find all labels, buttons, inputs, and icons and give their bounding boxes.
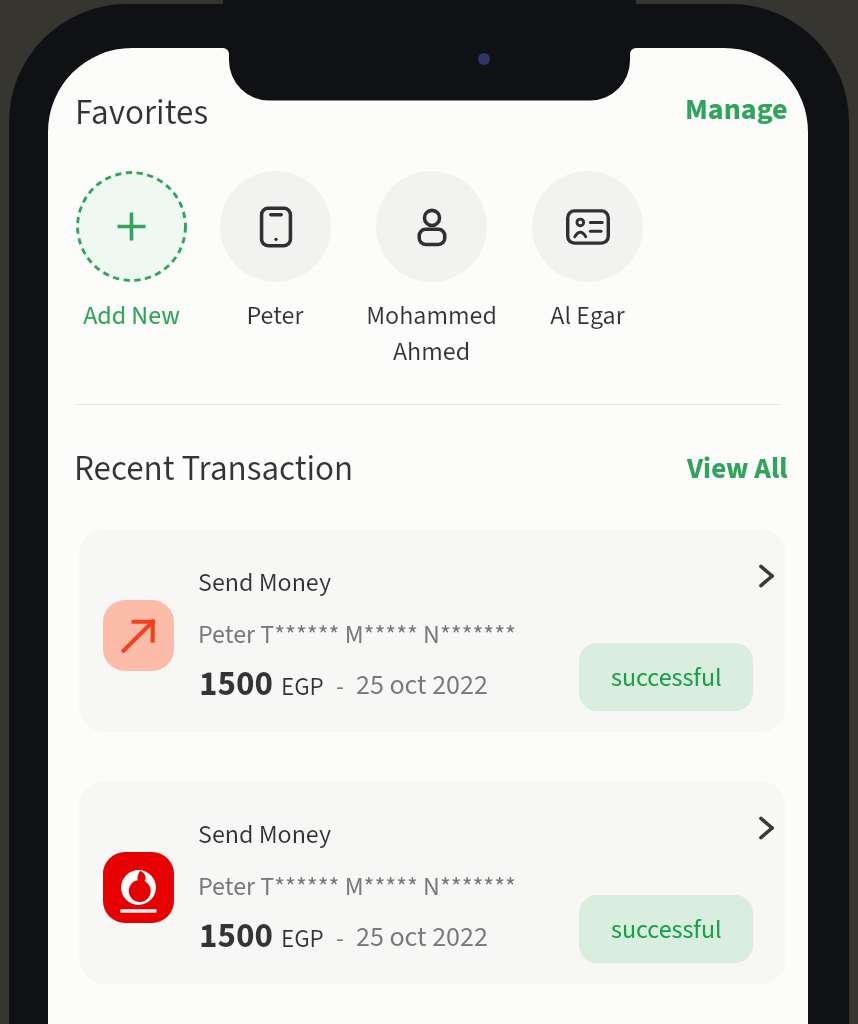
button[interactable]: Open transaction details <box>749 811 783 845</box>
button[interactable]: View All <box>572 445 788 491</box>
staticText: 1500 <box>199 659 273 709</box>
button[interactable]: Mohammed Ahmed <box>376 171 487 282</box>
button[interactable]: successful <box>579 895 753 963</box>
staticText: Al Egar <box>550 297 625 334</box>
button[interactable]: Peter <box>220 171 331 282</box>
button[interactable]: Open transaction details <box>749 559 783 593</box>
staticText: Favorites <box>75 88 209 138</box>
staticText: - <box>336 921 344 957</box>
staticText: successful <box>611 659 722 696</box>
staticText: Peter T****** M***** N******* <box>198 616 516 653</box>
button[interactable]: Add New <box>76 171 187 282</box>
staticText: EGP <box>281 921 324 957</box>
staticText: Send Money <box>198 816 332 853</box>
staticText: 25 oct 2022 <box>356 665 488 705</box>
staticText: 1500 <box>199 911 273 961</box>
staticText: successful <box>611 911 722 948</box>
staticText: Mohammed Ahmed <box>366 297 497 370</box>
staticText: EGP <box>281 669 324 705</box>
button[interactable] <box>79 529 786 732</box>
staticText: 25 oct 2022 <box>356 917 488 957</box>
staticText: - <box>336 669 344 705</box>
button[interactable]: successful <box>579 643 753 711</box>
staticText: Manage <box>685 88 788 131</box>
button[interactable]: Al Egar <box>532 171 643 282</box>
button[interactable]: Manage <box>572 86 788 132</box>
staticText: Peter <box>246 297 304 334</box>
button[interactable] <box>79 781 786 984</box>
staticText: Peter T****** M***** N******* <box>198 868 516 905</box>
staticText: Add New <box>83 297 180 334</box>
staticText: Recent Transaction <box>74 444 354 494</box>
staticText: Send Money <box>198 564 332 601</box>
button[interactable]: Favorites <box>67 81 201 131</box>
staticText: View All <box>687 448 788 489</box>
button[interactable]: Recent Transaction <box>66 437 346 487</box>
